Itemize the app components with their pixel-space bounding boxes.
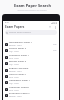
staticText: OCR · 2024 [9,89,19,92]
staticText: AQA · 2023 [9,63,19,66]
button[interactable]: Geography Paper 1 [3,79,59,85]
staticText: OCR · 2023 [9,57,19,60]
staticText: Edexcel · 2024 [9,44,22,47]
button[interactable]: Physics Paper 2 [3,47,59,53]
button[interactable]: Mathematics Paper 1 [3,41,59,47]
staticText: Physics Paper 2 [9,47,26,50]
staticText: Edexcel · 2024 [9,70,22,73]
staticText: AQA · 2024 [9,50,19,53]
staticText: Search exam papers [9,31,31,34]
button[interactable]: Filter [48,25,52,29]
staticText: Economics Paper 2 [9,92,30,95]
staticText: Biology Paper 3 [9,60,27,63]
staticText: PDF [53,43,57,46]
staticText: History Paper 2 [9,73,26,76]
staticText: 9:41 [5,21,9,24]
button[interactable]: Chemistry Paper 1 [3,54,59,60]
button[interactable]: Search exam papers [5,30,57,35]
staticText: AQA · 2023 [9,82,19,85]
staticText: Chemistry Paper 1 [9,54,30,57]
staticText: Search past papers by subject [17,9,47,12]
button[interactable]: History Paper 2 [3,73,59,79]
staticText: Mathematics Paper 1 [9,41,33,44]
button[interactable]: More options [53,25,57,29]
staticText: Geography Paper 1 [9,79,31,82]
staticText: Edexcel · 2022 [9,95,22,98]
button[interactable]: English Literature [3,67,59,73]
button[interactable]: Computer Science [3,86,59,92]
staticText: Computer Science [9,86,29,89]
staticText: English Literature [9,67,29,70]
button[interactable]: Economics Paper 2 [3,92,59,98]
staticText: Exam Paper Search [14,3,51,8]
staticText: OCR · 2022 [9,76,19,79]
staticText: Exam Papers [5,25,25,29]
button[interactable]: Biology Paper 3 [3,60,59,66]
staticText: PDF [53,49,57,52]
